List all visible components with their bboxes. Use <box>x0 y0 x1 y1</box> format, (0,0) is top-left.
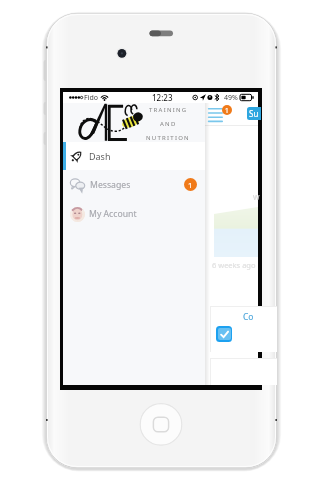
staticText: AND <box>160 120 177 128</box>
button[interactable]: Co <box>210 306 277 352</box>
staticText: 49% <box>224 93 238 103</box>
button[interactable]: Open navigation menu <box>206 106 224 122</box>
staticText: 1 <box>188 180 193 190</box>
staticText: TRAINING <box>149 106 188 114</box>
staticText: Co <box>243 311 254 323</box>
button[interactable]: My Account <box>63 199 205 229</box>
staticText: W <box>253 193 260 203</box>
button[interactable]: Dash <box>63 142 205 170</box>
button[interactable]: Su <box>247 107 261 120</box>
button[interactable]: Workout completed <box>216 326 232 342</box>
button[interactable]: Messages <box>63 170 205 199</box>
staticText: 12:23 <box>152 92 173 103</box>
staticText: Su <box>249 108 259 119</box>
staticText: Fido <box>84 93 98 103</box>
staticText: 1 <box>225 106 229 115</box>
staticText: 6 weeks ago <box>212 260 256 270</box>
staticText: Messages <box>90 179 131 191</box>
staticText: My Account <box>89 208 137 220</box>
staticText: NUTRITION <box>146 134 190 142</box>
button[interactable]: 1 unread notification <box>222 105 232 115</box>
staticText: Dash <box>89 150 111 162</box>
